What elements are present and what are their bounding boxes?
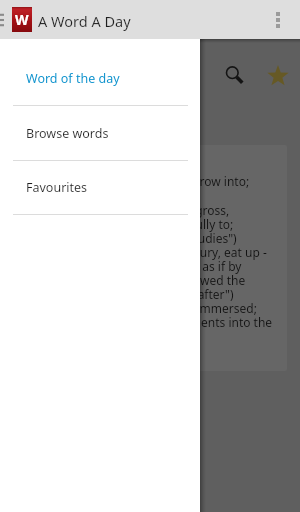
button[interactable]: Add to favourites (260, 60, 297, 97)
staticText: Word of the day (26, 70, 120, 87)
button[interactable]: Open navigation drawer (0, 5, 10, 35)
button[interactable]: Browse words (0, 106, 200, 160)
staticText: verb tr.: to dig; to plunge or burrow in… (23, 173, 250, 189)
button[interactable]: Search (214, 60, 251, 97)
staticText: W (15, 10, 29, 29)
staticText: Favourites (26, 179, 88, 196)
staticText: Browse words (26, 125, 109, 142)
staticText: A Word A Day (38, 11, 131, 31)
button[interactable]: Word of the day (0, 51, 200, 105)
button[interactable]: More options (263, 5, 293, 35)
button[interactable]: Favourites (0, 161, 200, 214)
staticText: 1. to cover up; to absorb, to engross, t… (23, 202, 273, 330)
